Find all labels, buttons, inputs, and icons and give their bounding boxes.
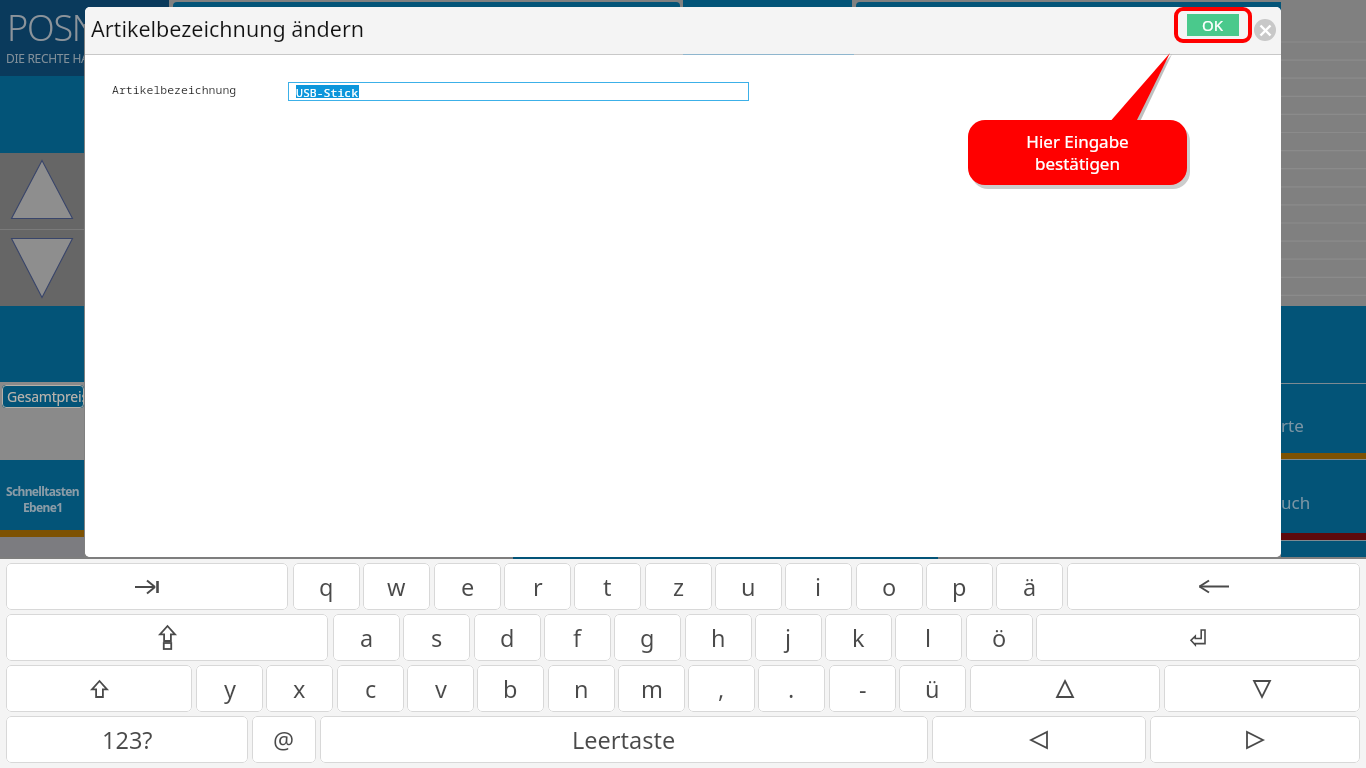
button[interactable]: ü	[899, 665, 966, 712]
button[interactable]	[173, 2, 680, 22]
button[interactable]: r	[504, 563, 571, 610]
button[interactable]: c	[337, 665, 404, 712]
button[interactable]: j	[755, 614, 822, 661]
button[interactable]: t	[574, 563, 641, 610]
button[interactable]: f	[544, 614, 611, 661]
button[interactable]: ö	[966, 614, 1033, 661]
staticText: Leertaste	[572, 724, 676, 756]
button[interactable]: Scroll up	[0, 153, 84, 229]
button[interactable]: @	[252, 716, 316, 763]
button[interactable]: Down	[1164, 665, 1360, 712]
staticText: a	[360, 622, 374, 654]
staticText: h	[711, 622, 726, 654]
staticText: Ebene1	[23, 499, 63, 515]
button[interactable]: Left	[932, 716, 1146, 763]
staticText: l	[925, 622, 932, 654]
button[interactable]: .	[758, 665, 825, 712]
button[interactable]: 123?	[6, 716, 248, 763]
staticText: Artikelbezeichnung ändern	[91, 14, 365, 43]
button[interactable]: d	[474, 614, 541, 661]
button[interactable]: USB-Stick	[288, 82, 749, 101]
button[interactable]: Gesamtpreis	[2, 385, 84, 408]
button[interactable]: m	[618, 665, 685, 712]
staticText: Gesamtpreis	[7, 387, 84, 406]
button[interactable]: ,	[688, 665, 755, 712]
staticText: v	[435, 673, 447, 705]
staticText: @	[273, 724, 295, 756]
button[interactable]: Shift	[6, 665, 192, 712]
staticText: o	[882, 571, 897, 603]
button[interactable]: q	[293, 563, 360, 610]
staticText: ä	[1023, 571, 1037, 603]
button[interactable]: Tab	[6, 563, 288, 610]
button[interactable]: rte	[1281, 384, 1366, 453]
button[interactable]: Schnelltasten	[0, 460, 84, 530]
staticText: u	[741, 571, 756, 603]
staticText: i	[815, 571, 822, 603]
button[interactable]: Caps lock	[6, 614, 328, 661]
button[interactable]: Enter	[1036, 614, 1360, 661]
staticText: b	[503, 673, 518, 705]
staticText: uch	[1281, 491, 1311, 514]
staticText: Hier Eingabe bestätigen	[1026, 130, 1129, 175]
staticText: OK	[1202, 15, 1224, 35]
button[interactable]: x	[266, 665, 333, 712]
staticText: rte	[1281, 414, 1304, 437]
staticText: Artikelbezeichnung	[112, 82, 237, 98]
staticText: ü	[925, 673, 940, 705]
button[interactable]: Leertaste	[320, 716, 928, 763]
staticText: m	[641, 673, 663, 705]
staticText: -	[859, 673, 867, 705]
button[interactable]: u	[715, 563, 782, 610]
staticText: w	[387, 571, 406, 603]
button[interactable]: z	[645, 563, 712, 610]
button[interactable]: o	[856, 563, 923, 610]
staticText: USB-Stick	[296, 85, 359, 98]
button[interactable]: v	[407, 665, 474, 712]
button[interactable]	[856, 2, 1363, 22]
button[interactable]: b	[477, 665, 544, 712]
button[interactable]: l	[895, 614, 962, 661]
button[interactable]: n	[548, 665, 615, 712]
staticText: ,	[718, 673, 725, 705]
button[interactable]: Scroll down	[0, 230, 84, 306]
button[interactable]: s	[403, 614, 470, 661]
button[interactable]: -	[829, 665, 896, 712]
button[interactable]: i	[785, 563, 852, 610]
staticText: r	[533, 571, 543, 603]
staticText: j	[785, 622, 792, 654]
button[interactable]: k	[825, 614, 892, 661]
button[interactable]: Right	[1150, 716, 1360, 763]
staticText: g	[640, 622, 655, 654]
button[interactable]: ä	[996, 563, 1063, 610]
staticText: .	[788, 673, 795, 705]
button[interactable]: Up	[970, 665, 1160, 712]
staticText: d	[500, 622, 515, 654]
button[interactable]: g	[614, 614, 681, 661]
staticText: t	[603, 571, 612, 603]
staticText: f	[573, 622, 582, 654]
button[interactable]: uch	[1281, 460, 1366, 533]
button[interactable]: Backspace	[1067, 563, 1360, 610]
button[interactable]: a	[333, 614, 400, 661]
staticText: Schnelltasten	[6, 483, 79, 499]
button[interactable]: Close dialog	[1254, 19, 1276, 41]
button[interactable]: h	[685, 614, 752, 661]
button[interactable]: e	[434, 563, 501, 610]
staticText: 123?	[102, 724, 153, 756]
staticText: y	[224, 673, 236, 705]
staticText: c	[365, 673, 377, 705]
button[interactable]: OK	[1174, 7, 1252, 43]
staticText: s	[431, 622, 443, 654]
staticText: ö	[992, 622, 1007, 654]
button[interactable]: w	[363, 563, 430, 610]
button[interactable]: y	[196, 665, 263, 712]
staticText: POSN	[7, 3, 84, 52]
button[interactable]	[683, 0, 852, 22]
button[interactable]: p	[926, 563, 993, 610]
staticText: z	[673, 571, 685, 603]
staticText: n	[574, 673, 589, 705]
